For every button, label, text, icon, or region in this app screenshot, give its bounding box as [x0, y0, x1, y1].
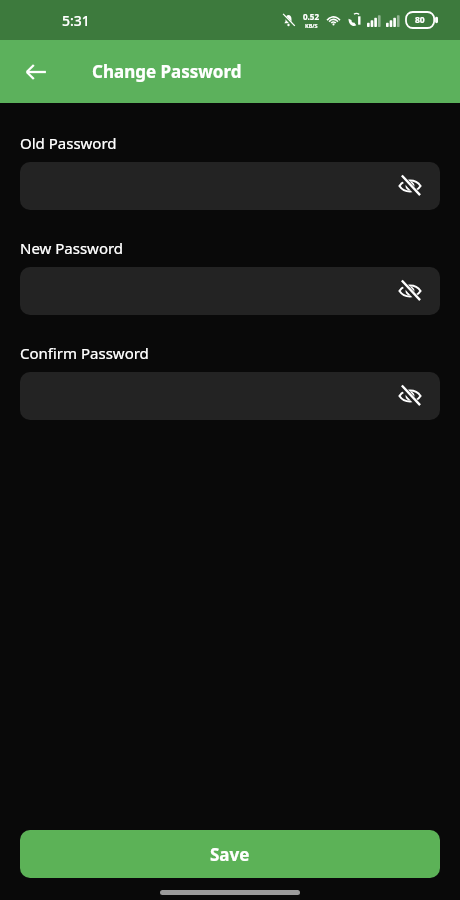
staticText: 0.52 — [303, 11, 319, 22]
button[interactable]: Show password — [390, 166, 430, 206]
staticText: KB/S — [305, 22, 318, 29]
staticText: Confirm Password — [20, 343, 149, 363]
button[interactable]: Show password — [20, 162, 440, 210]
staticText: Save — [210, 843, 250, 866]
staticText: Change Password — [92, 60, 242, 83]
staticText: 5:31 — [62, 11, 90, 30]
button[interactable]: Show password — [20, 372, 440, 420]
staticText: Old Password — [20, 133, 117, 153]
staticText: 80 — [415, 14, 425, 26]
button[interactable]: Back — [14, 50, 58, 94]
button[interactable]: Save — [20, 830, 440, 878]
button[interactable]: Show password — [20, 267, 440, 315]
staticText: New Password — [20, 238, 124, 258]
button[interactable]: Show password — [390, 271, 430, 311]
button[interactable]: Show password — [390, 376, 430, 416]
